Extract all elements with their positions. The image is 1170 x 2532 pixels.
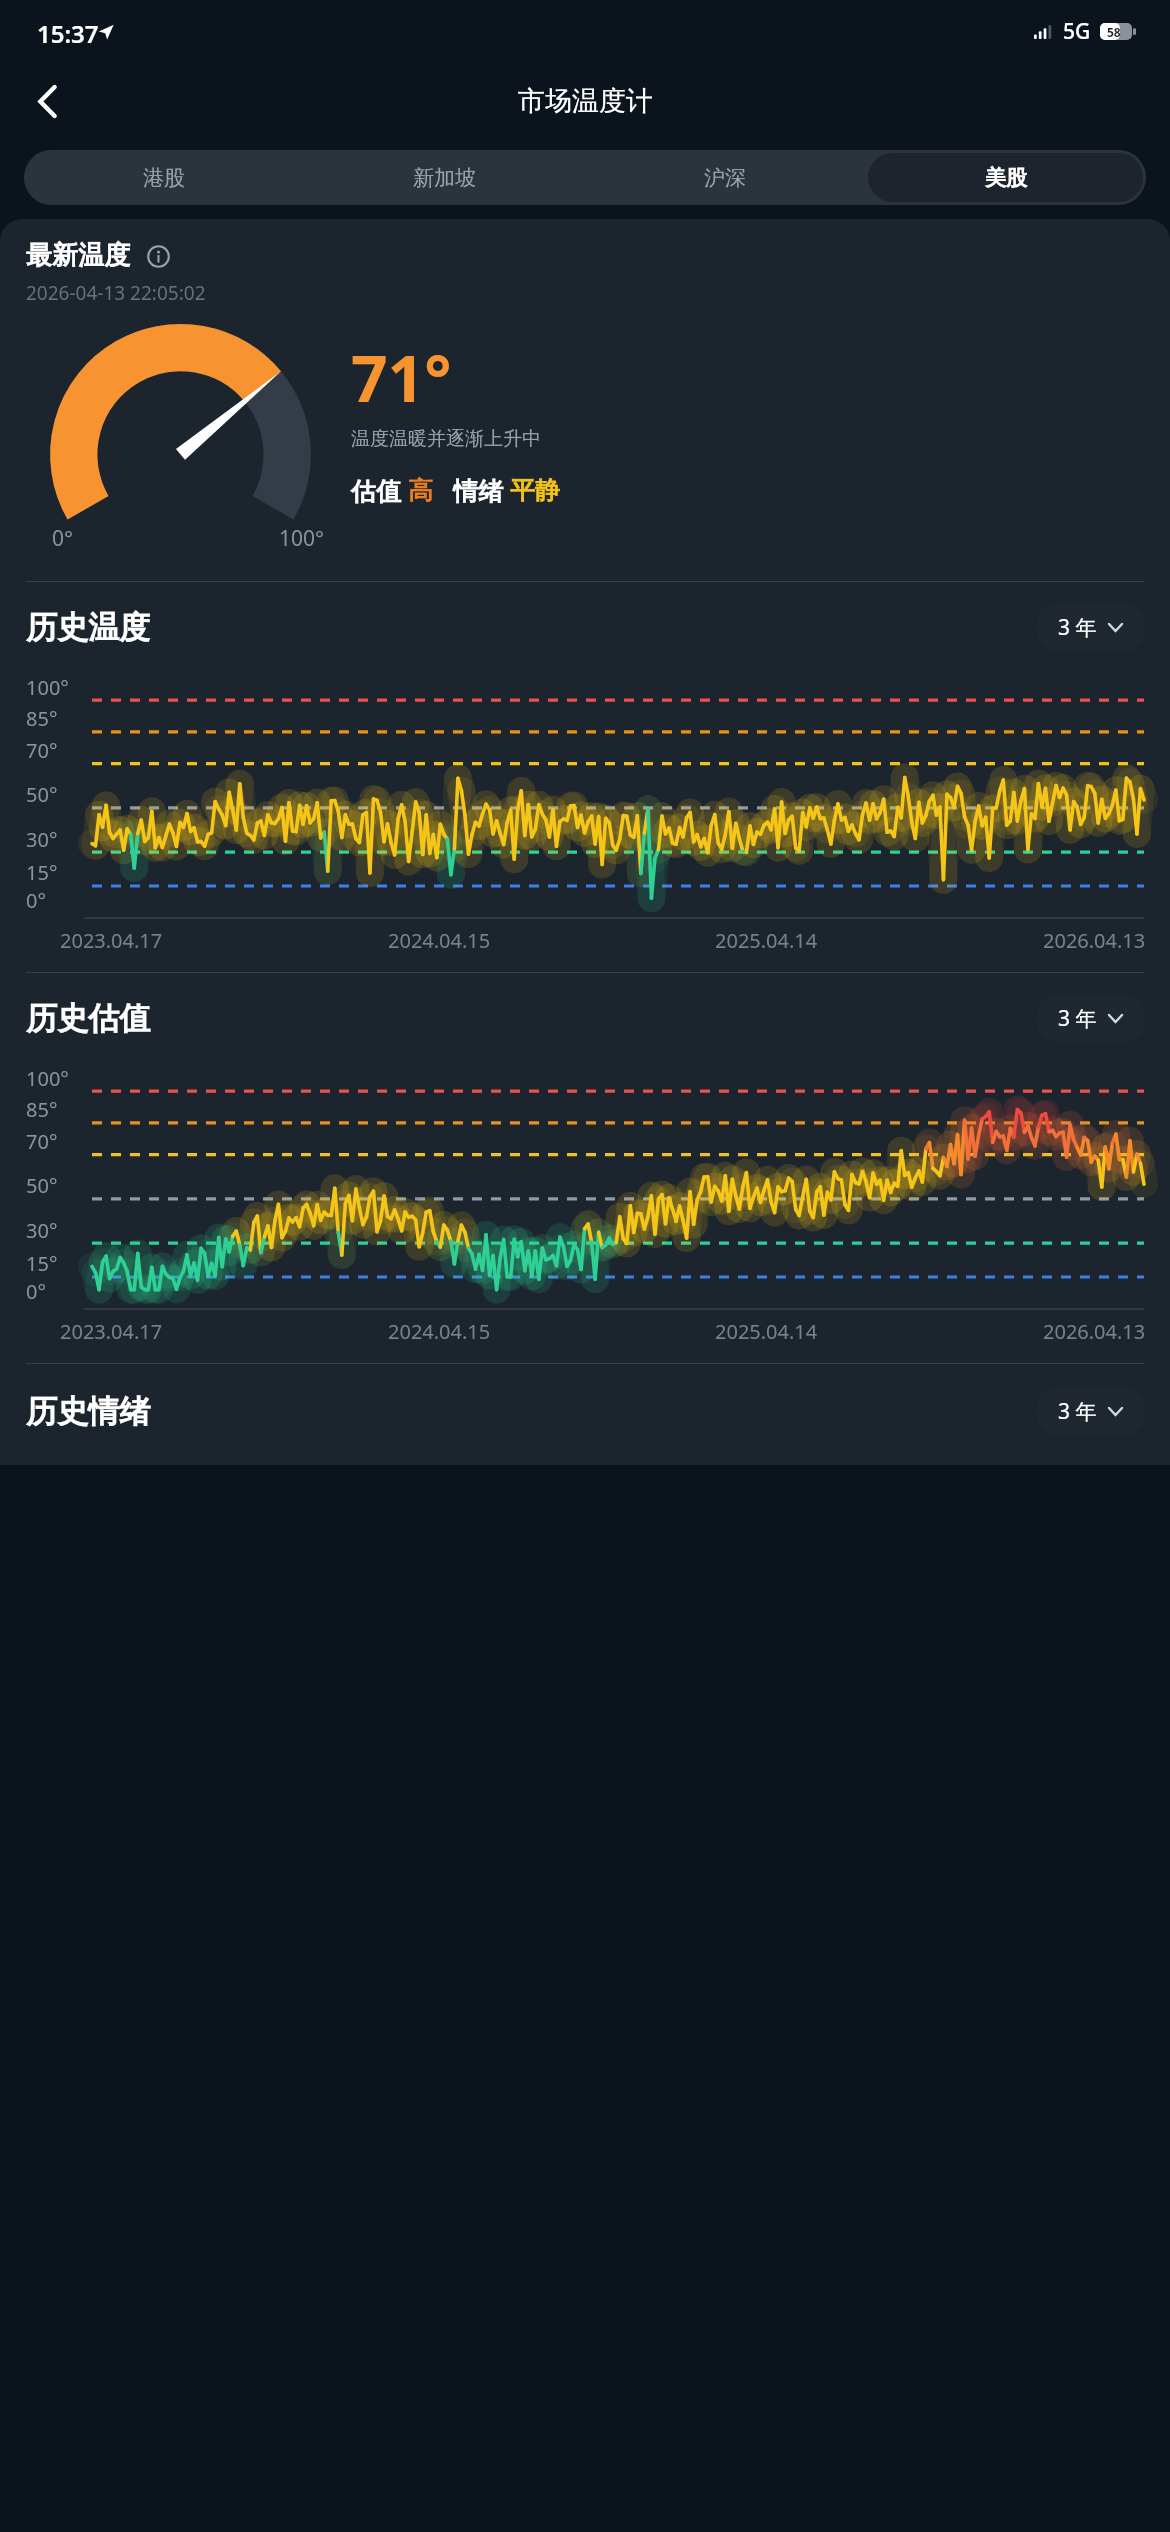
staticText: 历史温度 — [26, 608, 150, 647]
staticText: 15° — [26, 1250, 58, 1277]
staticText: 估值 — [351, 473, 408, 507]
staticText: 历史估值 — [26, 999, 150, 1038]
staticText: 市场温度计 — [518, 84, 653, 118]
staticText: 历史情绪 — [26, 1392, 150, 1431]
staticText: 100° — [26, 1065, 69, 1092]
staticText: 3 年 — [1058, 613, 1097, 642]
button[interactable]: 港股 — [27, 153, 301, 202]
staticText: 0° — [26, 1278, 46, 1305]
staticText: 3 年 — [1058, 1397, 1097, 1426]
button[interactable]: 3 年 — [1037, 1388, 1144, 1435]
staticText: 2024.04.15 — [388, 1318, 491, 1345]
staticText: 0° — [26, 887, 46, 914]
button[interactable]: 3 年 — [1037, 604, 1144, 651]
staticText: 50° — [26, 781, 58, 808]
button[interactable]: 沪深 — [587, 153, 862, 202]
staticText: 15:37 — [37, 17, 99, 50]
staticText: 平静 — [510, 475, 560, 506]
staticText: 30° — [26, 1217, 58, 1244]
staticText: 2024.04.15 — [388, 927, 491, 954]
staticText: 58 — [1107, 24, 1121, 40]
button[interactable]: Info — [144, 242, 172, 270]
staticText: 100° — [26, 674, 69, 701]
staticText: 70° — [26, 1128, 58, 1155]
staticText: 2023.04.17 — [60, 1318, 163, 1345]
staticText: 85° — [26, 1096, 58, 1123]
staticText: 2026.04.13 — [1043, 1318, 1146, 1345]
staticText: 最新温度 — [26, 239, 130, 272]
staticText: 71° — [351, 334, 452, 421]
staticText: 15° — [26, 859, 58, 886]
staticText: 2023.04.17 — [60, 927, 163, 954]
button[interactable]: 美股 — [868, 153, 1143, 202]
staticText: 2025.04.14 — [715, 1318, 818, 1345]
staticText: 50° — [26, 1172, 58, 1199]
staticText: 3 年 — [1058, 1004, 1097, 1033]
staticText: 新加坡 — [413, 165, 476, 191]
staticText: 温度温暖并逐渐上升中 — [351, 427, 541, 451]
staticText: 美股 — [985, 165, 1027, 191]
staticText: 5G — [1063, 17, 1091, 46]
staticText: 2026.04.13 — [1043, 927, 1146, 954]
staticText: 2026-04-13 22:05:02 — [26, 280, 206, 306]
button[interactable]: 新加坡 — [307, 153, 581, 202]
button[interactable]: 3 年 — [1037, 995, 1144, 1042]
button[interactable]: Back — [18, 72, 76, 130]
staticText: 30° — [26, 826, 58, 853]
staticText: 2025.04.14 — [715, 927, 818, 954]
staticText: 0° — [52, 524, 73, 553]
staticText: 100° — [279, 524, 325, 553]
staticText: 沪深 — [704, 165, 746, 191]
staticText: 高 — [408, 475, 433, 506]
staticText: 港股 — [143, 165, 185, 191]
staticText: 70° — [26, 737, 58, 764]
staticText: 情绪 — [453, 473, 510, 507]
staticText: 85° — [26, 705, 58, 732]
